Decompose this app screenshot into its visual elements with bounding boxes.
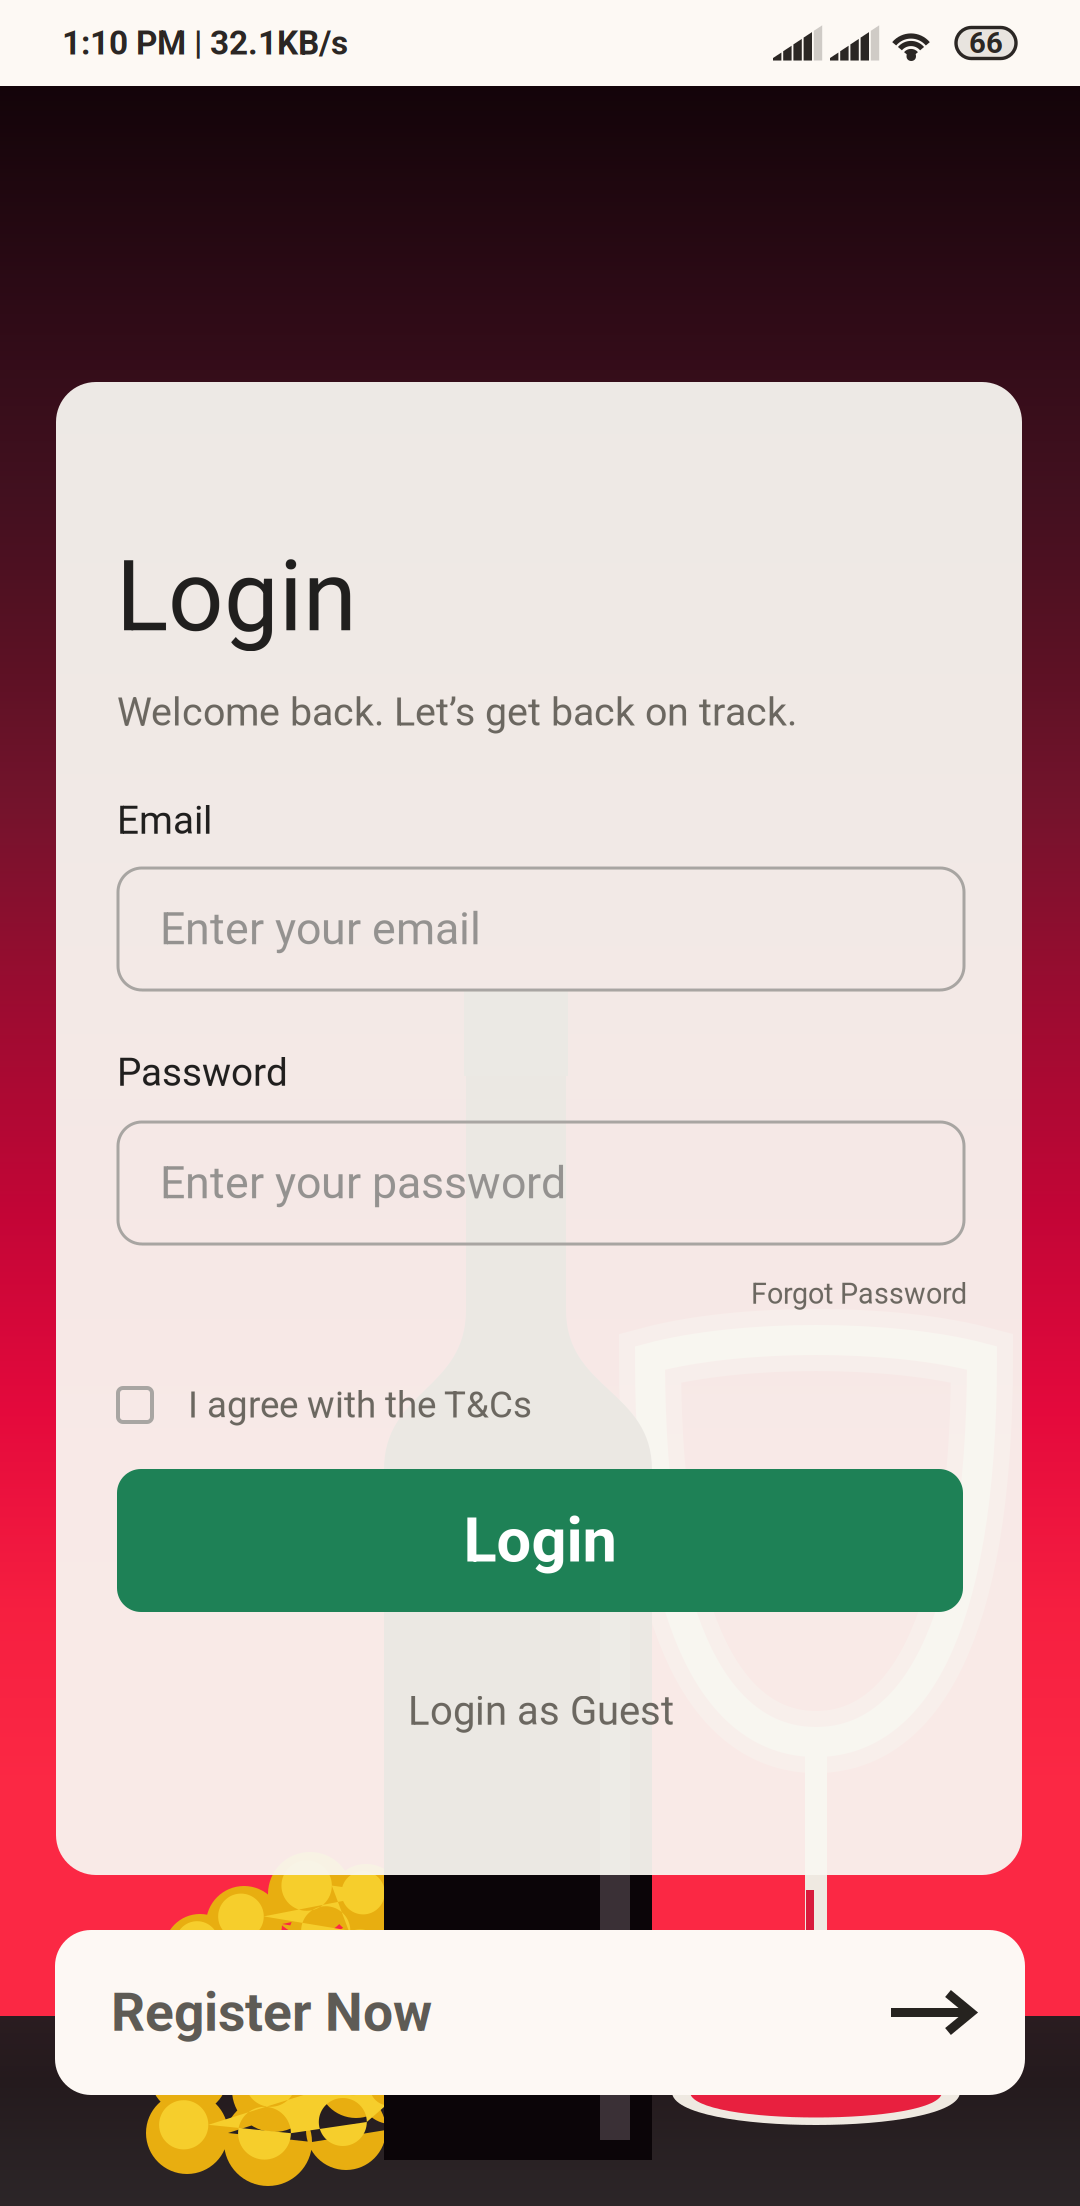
staticText: Password: [117, 1050, 288, 1095]
staticText: I agree with the T&Cs: [188, 1383, 532, 1426]
staticText: Enter your email: [160, 903, 481, 955]
staticText: Login: [116, 540, 357, 654]
staticText: Login as Guest: [408, 1688, 674, 1734]
button[interactable]: Register Now: [55, 1930, 1025, 2095]
button[interactable]: I agree with the T&Cs: [118, 1382, 964, 1428]
button[interactable]: Forgot Password: [118, 1274, 967, 1314]
staticText: Welcome back. Let’s get back on track.: [117, 689, 797, 735]
staticText: Enter your password: [160, 1157, 566, 1209]
staticText: Email: [117, 798, 212, 843]
staticText: Register Now: [111, 1981, 432, 2044]
button[interactable]: Login as Guest: [118, 1689, 964, 1733]
staticText: 66: [969, 26, 1003, 60]
staticText: 1:10 PM | 32.1KB/s: [62, 23, 348, 63]
button[interactable]: Login: [117, 1469, 963, 1612]
staticText: Forgot Password: [751, 1277, 967, 1311]
staticText: Login: [463, 1505, 616, 1576]
